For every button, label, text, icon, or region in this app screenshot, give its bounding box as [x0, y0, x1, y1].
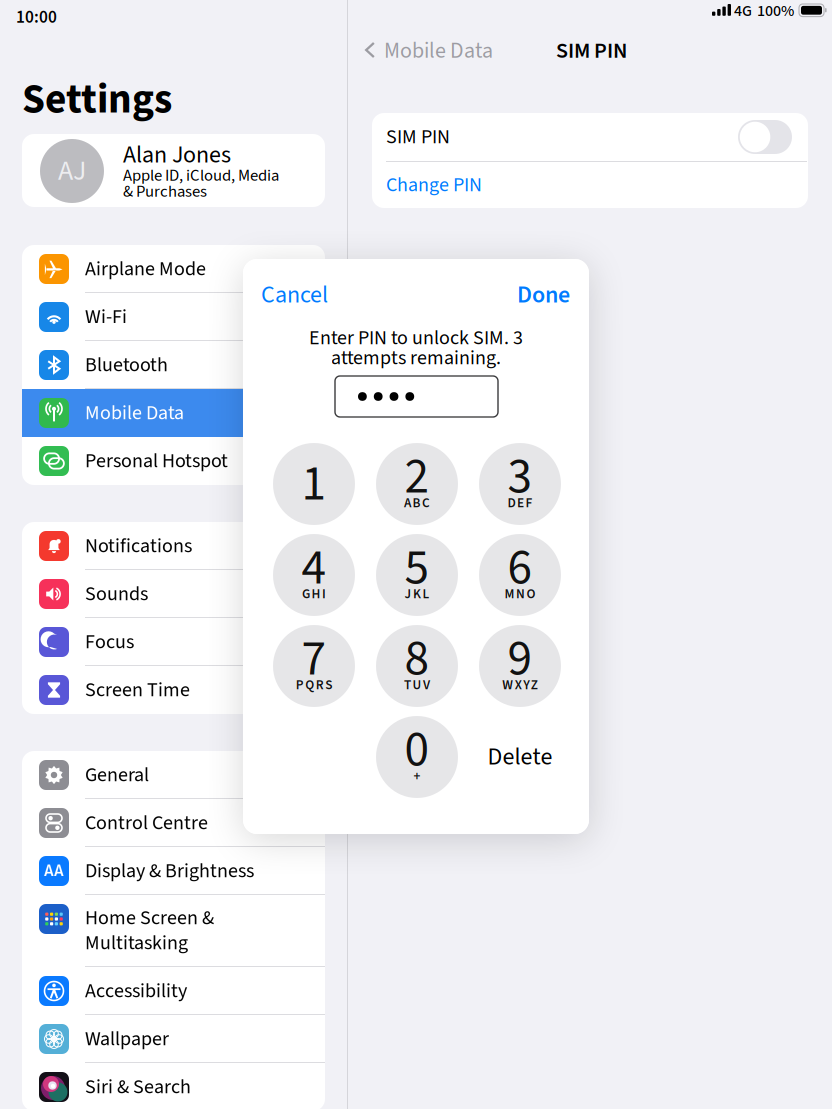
button[interactable]: Done	[490, 278, 570, 312]
staticText: ABC	[404, 493, 430, 512]
staticText: Home Screen &	[85, 904, 214, 932]
button[interactable]: Wallpaper	[22, 1015, 325, 1063]
staticText: Focus	[85, 628, 134, 656]
staticText: Apple ID, iCloud, Media	[123, 164, 279, 187]
staticText: Mobile Data	[85, 399, 184, 427]
button[interactable]: 9	[479, 625, 561, 707]
button[interactable]: Notifications	[22, 522, 325, 570]
staticText: GHI	[302, 584, 326, 603]
staticText: 1	[301, 449, 326, 519]
button[interactable]: 1	[273, 443, 355, 525]
button[interactable]: Cancel	[261, 278, 328, 312]
staticText: Multitasking	[85, 929, 188, 957]
staticText: Alan Jones	[123, 138, 231, 172]
staticText: 4	[301, 533, 326, 603]
staticText: +	[413, 766, 420, 785]
button[interactable]: Delete	[479, 716, 561, 798]
staticText: Bluetooth	[85, 351, 168, 379]
button[interactable]: Mobile Data	[22, 389, 325, 437]
staticText: MNO	[504, 584, 535, 603]
button[interactable]: 5	[376, 534, 458, 616]
staticText: Wi-Fi	[85, 303, 127, 331]
button[interactable]: 7	[273, 625, 355, 707]
staticText: Settings	[22, 70, 172, 129]
button[interactable]: General	[22, 751, 325, 799]
staticText: 100%	[757, 0, 794, 22]
staticText: Sounds	[85, 580, 148, 608]
staticText: SIM PIN	[386, 123, 450, 151]
button[interactable]: SIM PIN	[372, 113, 808, 161]
staticText: SIM PIN	[556, 35, 627, 67]
staticText: 8	[404, 624, 429, 694]
staticText: 4G	[734, 0, 752, 22]
staticText: Cancel	[261, 278, 328, 312]
button[interactable]: 4	[273, 534, 355, 616]
staticText: Control Centre	[85, 809, 208, 837]
button[interactable]: 8	[376, 625, 458, 707]
staticText: Done	[517, 278, 570, 312]
staticText: 6	[507, 533, 532, 603]
staticText: Airplane Mode	[85, 255, 206, 283]
button[interactable]: Sounds	[22, 570, 325, 618]
button[interactable]: Focus	[22, 618, 325, 666]
button[interactable]: Personal Hotspot	[22, 437, 325, 485]
button[interactable]: Wi-Fi	[22, 293, 325, 341]
button[interactable]: Mobile Data	[362, 36, 492, 66]
staticText: Screen Time	[85, 676, 190, 704]
button[interactable]: Airplane Mode	[22, 245, 325, 293]
button[interactable]: AA	[22, 847, 325, 895]
staticText: PQRS	[296, 675, 332, 694]
staticText: Enter PIN to unlock SIM. 3	[309, 324, 523, 352]
staticText: Delete	[487, 740, 552, 774]
button[interactable]: Change PIN	[372, 162, 808, 208]
button[interactable]: 0	[376, 716, 458, 798]
staticText: 2	[404, 442, 429, 512]
staticText: attempts remaining.	[331, 344, 501, 372]
staticText: AJ	[58, 151, 86, 191]
staticText: Mobile Data	[384, 35, 493, 67]
button[interactable]: Screen Time	[22, 666, 325, 714]
staticText: Wallpaper	[85, 1025, 169, 1053]
staticText: 0	[404, 715, 429, 785]
button[interactable]: 6	[479, 534, 561, 616]
staticText: 3	[507, 442, 532, 512]
button[interactable]: Home Screen &	[22, 895, 325, 967]
staticText: Accessibility	[85, 977, 187, 1005]
staticText: Notifications	[85, 532, 192, 560]
staticText: AA	[44, 859, 64, 883]
staticText: & Purchases	[123, 180, 207, 203]
button[interactable]: Siri & Search	[22, 1063, 325, 1109]
staticText: Change PIN	[386, 171, 482, 199]
staticText: General	[85, 761, 149, 789]
staticText: JKL	[404, 584, 429, 603]
staticText: Personal Hotspot	[85, 447, 228, 475]
button[interactable]: Bluetooth	[22, 341, 325, 389]
button[interactable]: AJ	[22, 134, 325, 207]
staticText: 5	[404, 533, 429, 603]
button[interactable]: 2	[376, 443, 458, 525]
button[interactable]: Accessibility	[22, 967, 325, 1015]
staticText: 9	[507, 624, 532, 694]
staticText: DEF	[507, 493, 532, 512]
staticText: Siri & Search	[85, 1073, 191, 1101]
staticText: WXYZ	[502, 675, 538, 694]
button[interactable]: 3	[479, 443, 561, 525]
button[interactable]: Control Centre	[22, 799, 325, 847]
staticText: 7	[301, 624, 326, 694]
staticText: 10:00	[16, 5, 57, 30]
staticText: TUV	[404, 675, 430, 694]
staticText: Display & Brightness	[85, 857, 254, 885]
